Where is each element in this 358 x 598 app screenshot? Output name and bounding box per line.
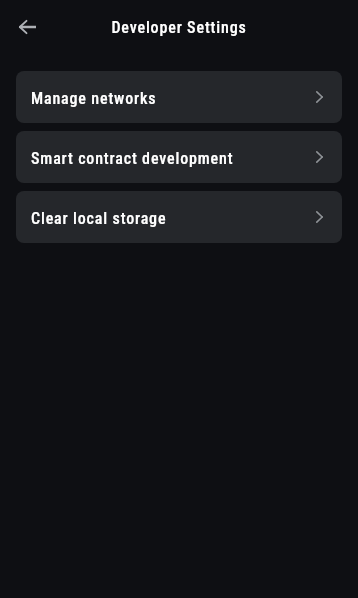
button[interactable]: Back xyxy=(11,11,43,43)
staticText: Developer Settings xyxy=(111,18,247,37)
button[interactable]: Smart contract development xyxy=(16,131,342,183)
button[interactable]: Manage networks xyxy=(16,71,342,123)
staticText: Smart contract development xyxy=(31,149,234,168)
button[interactable]: Clear local storage xyxy=(16,191,342,243)
staticText: Manage networks xyxy=(31,89,157,108)
staticText: Clear local storage xyxy=(31,209,167,228)
